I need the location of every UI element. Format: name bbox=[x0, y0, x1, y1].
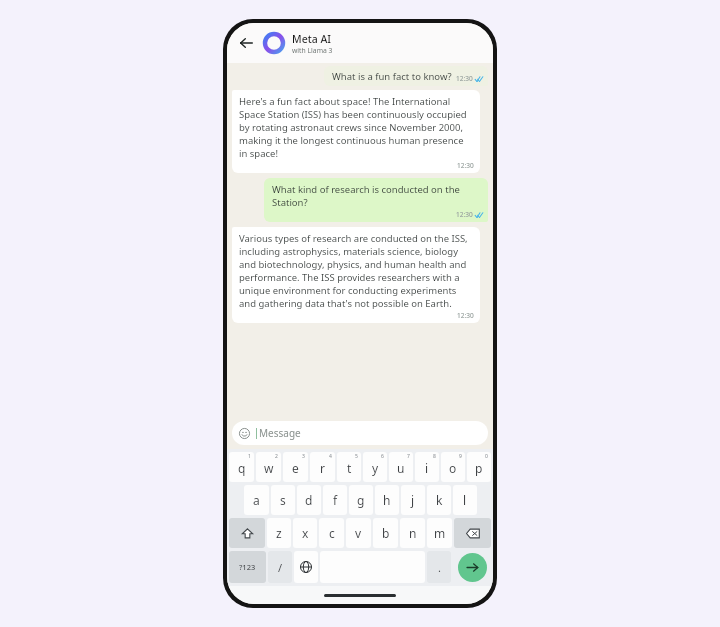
button[interactable]: b bbox=[373, 518, 398, 548]
staticText: 4 bbox=[329, 453, 332, 460]
staticText: f bbox=[333, 492, 338, 508]
staticText: ?123 bbox=[239, 562, 256, 572]
staticText: 7 bbox=[407, 453, 410, 460]
staticText: u bbox=[397, 460, 405, 476]
staticText: 12:30 bbox=[456, 74, 473, 83]
staticText: e bbox=[292, 460, 299, 476]
staticText: z bbox=[276, 525, 282, 541]
button[interactable]: v bbox=[346, 518, 371, 548]
button[interactable]: z bbox=[267, 518, 291, 548]
staticText: i bbox=[425, 460, 429, 476]
button[interactable]: Change language bbox=[294, 551, 318, 583]
staticText: k bbox=[436, 492, 443, 508]
staticText: 1 bbox=[248, 453, 251, 460]
staticText: g bbox=[357, 492, 365, 508]
button[interactable]: d bbox=[297, 485, 321, 515]
button[interactable]: 6 bbox=[363, 452, 387, 482]
button[interactable]: 0 bbox=[467, 452, 491, 482]
button[interactable]: 7 bbox=[389, 452, 413, 482]
staticText: w bbox=[264, 460, 274, 476]
button[interactable]: Send bbox=[458, 553, 487, 582]
staticText: x bbox=[302, 525, 309, 541]
staticText: 5 bbox=[355, 453, 358, 460]
button[interactable]: Back bbox=[235, 32, 257, 54]
staticText: c bbox=[329, 525, 335, 541]
staticText: d bbox=[305, 492, 313, 508]
staticText: 0 bbox=[485, 453, 488, 460]
staticText: Message bbox=[259, 426, 301, 440]
button[interactable]: What kind of research is conducted on th… bbox=[264, 178, 488, 222]
button[interactable]: s bbox=[271, 485, 295, 515]
button[interactable]: 3 bbox=[283, 452, 308, 482]
staticText: a bbox=[253, 492, 260, 508]
staticText: p bbox=[475, 460, 483, 476]
button[interactable]: 9 bbox=[441, 452, 465, 482]
staticText: q bbox=[238, 460, 246, 476]
staticText: j bbox=[411, 492, 415, 508]
staticText: v bbox=[355, 525, 362, 541]
button[interactable]: m bbox=[427, 518, 452, 548]
button[interactable]: Backspace bbox=[454, 518, 491, 548]
button[interactable]: h bbox=[375, 485, 399, 515]
button[interactable]: Shift bbox=[229, 518, 265, 548]
button[interactable]: What is a fun fact to know? bbox=[324, 66, 488, 86]
staticText: 12:30 bbox=[457, 311, 474, 320]
staticText: b bbox=[382, 525, 390, 541]
button[interactable]: a bbox=[244, 485, 269, 515]
button[interactable]: Message bbox=[232, 421, 488, 445]
staticText: 2 bbox=[275, 453, 278, 460]
button[interactable]: 2 bbox=[256, 452, 281, 482]
button[interactable]: j bbox=[401, 485, 425, 515]
staticText: 3 bbox=[302, 453, 305, 460]
staticText: with Llama 3 bbox=[292, 46, 333, 55]
button[interactable]: 1 bbox=[229, 452, 254, 482]
button[interactable]: Here's a fun fact about space! The Inter… bbox=[232, 90, 480, 173]
staticText: Meta AI bbox=[292, 32, 332, 46]
staticText: . bbox=[438, 560, 441, 575]
staticText: h bbox=[383, 492, 391, 508]
staticText: 12:30 bbox=[456, 210, 473, 219]
button[interactable]: x bbox=[293, 518, 317, 548]
button[interactable]: g bbox=[349, 485, 373, 515]
staticText: What is a fun fact to know? bbox=[332, 70, 452, 83]
button[interactable]: . bbox=[427, 551, 451, 583]
button[interactable]: l bbox=[453, 485, 477, 515]
button[interactable]: c bbox=[319, 518, 344, 548]
staticText: s bbox=[280, 492, 286, 508]
button[interactable]: / bbox=[268, 551, 292, 583]
button[interactable]: 8 bbox=[415, 452, 439, 482]
staticText: / bbox=[278, 560, 283, 575]
staticText: m bbox=[434, 525, 446, 541]
staticText: y bbox=[372, 460, 379, 476]
button[interactable]: ?123 bbox=[229, 551, 266, 583]
staticText: Here's a fun fact about space! The Inter… bbox=[239, 95, 474, 160]
staticText: What kind of research is conducted on th… bbox=[272, 183, 483, 209]
staticText: r bbox=[320, 460, 325, 476]
staticText: Various types of research are conducted … bbox=[239, 232, 474, 310]
staticText: t bbox=[347, 460, 352, 476]
button[interactable]: f bbox=[323, 485, 347, 515]
staticText: 6 bbox=[381, 453, 384, 460]
button[interactable]: k bbox=[427, 485, 451, 515]
staticText: 9 bbox=[459, 453, 462, 460]
button[interactable]: n bbox=[400, 518, 425, 548]
button[interactable]: 4 bbox=[310, 452, 335, 482]
staticText: n bbox=[409, 525, 417, 541]
staticText: l bbox=[463, 492, 467, 508]
button[interactable]: Various types of research are conducted … bbox=[232, 227, 480, 323]
staticText: o bbox=[449, 460, 457, 476]
staticText: 8 bbox=[433, 453, 436, 460]
button[interactable]: 5 bbox=[337, 452, 361, 482]
staticText: 12:30 bbox=[457, 161, 474, 170]
